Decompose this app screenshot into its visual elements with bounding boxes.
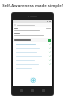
button[interactable]: Navigate up (13, 23, 52, 27)
button[interactable] (13, 28, 52, 32)
button[interactable] (13, 42, 52, 46)
button[interactable] (13, 62, 52, 66)
button[interactable] (13, 50, 52, 54)
button[interactable] (13, 38, 52, 42)
button[interactable] (13, 54, 52, 58)
button[interactable] (13, 58, 52, 62)
button[interactable] (13, 46, 52, 50)
button[interactable] (13, 66, 52, 70)
button[interactable]: Add entry (30, 77, 36, 83)
button[interactable] (13, 33, 52, 37)
staticText: Self-Awareness made simple! (2, 3, 63, 9)
